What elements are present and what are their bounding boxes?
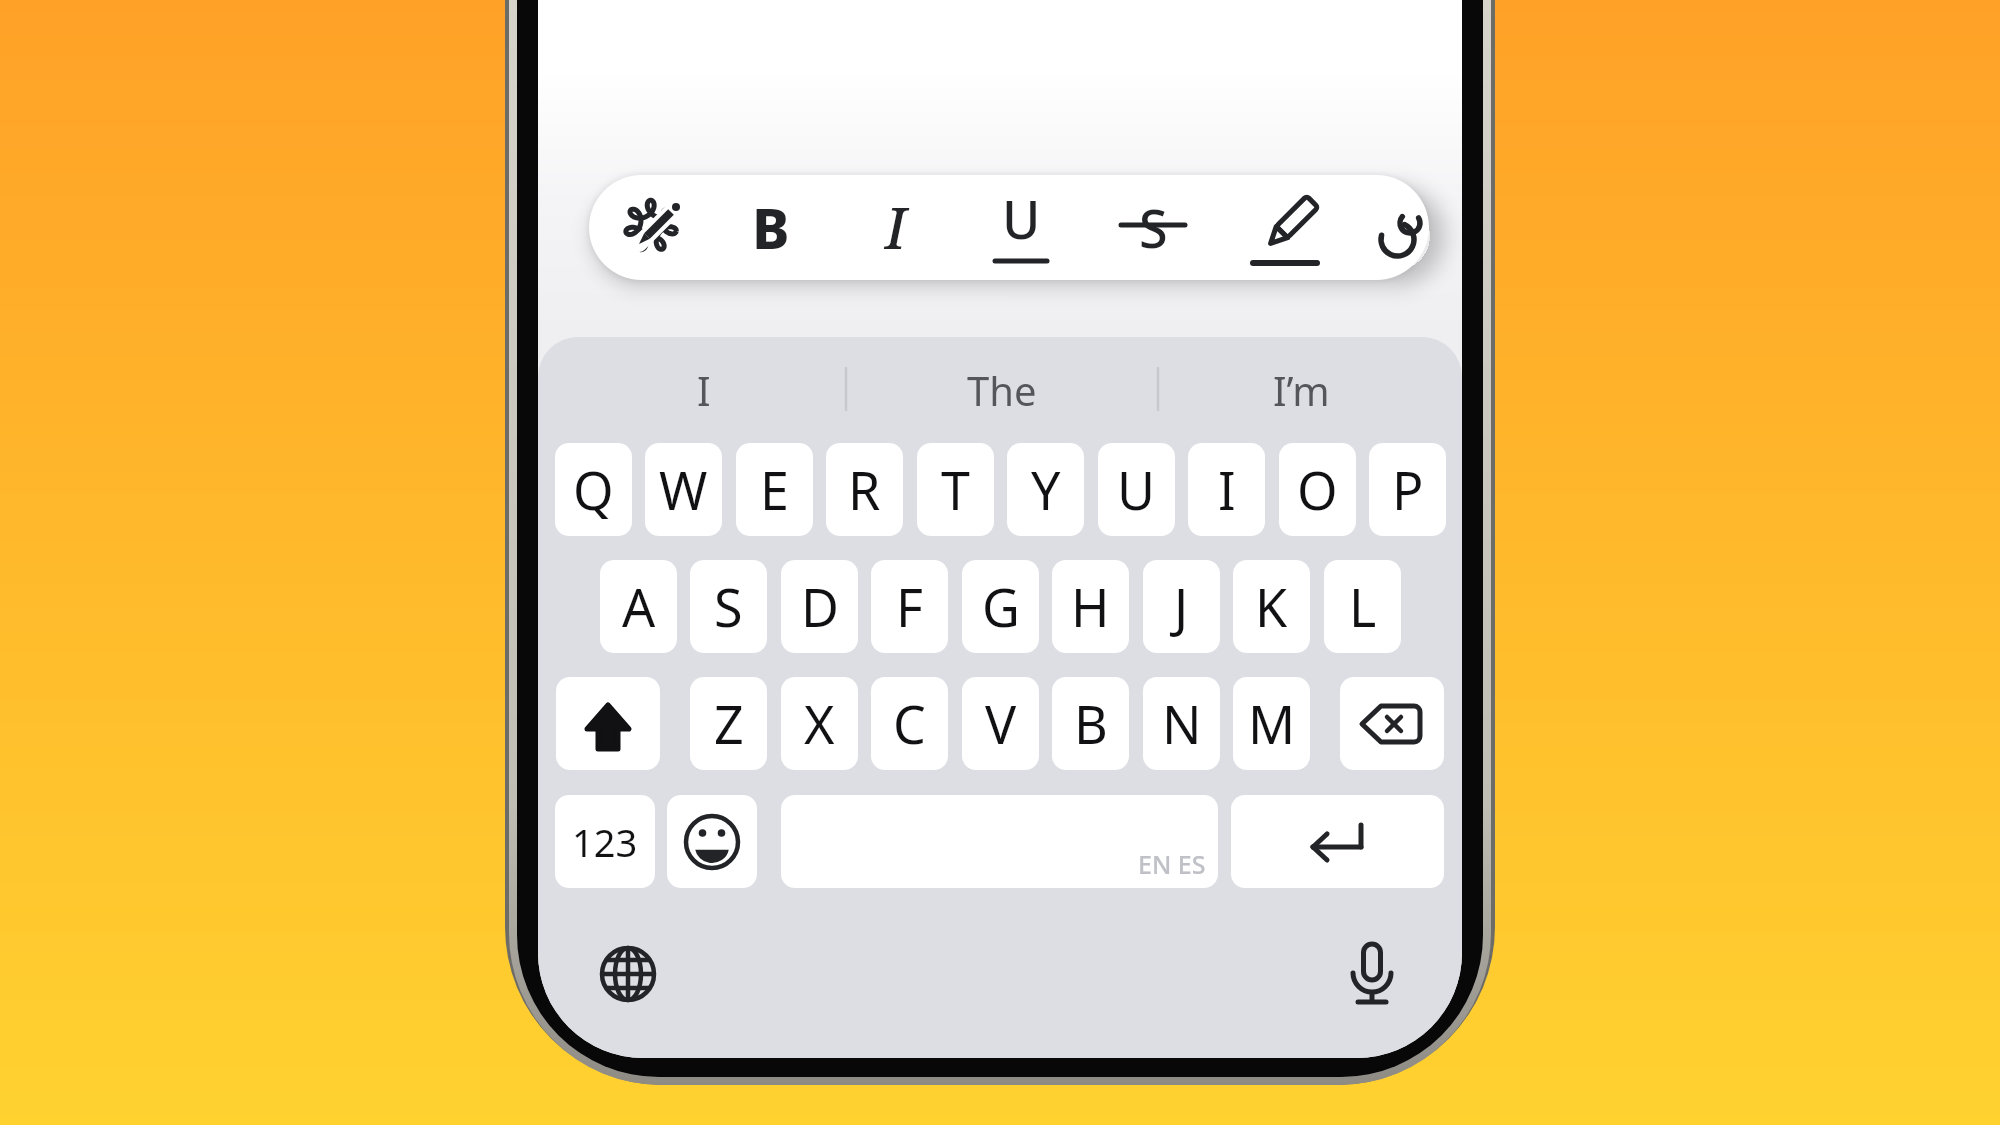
button[interactable]: K [1233, 560, 1310, 653]
button[interactable]: I’m [1158, 348, 1445, 432]
staticText: S [1139, 192, 1168, 263]
staticText: I [697, 363, 711, 417]
staticText: T [941, 454, 970, 525]
staticText: Z [714, 688, 744, 759]
button[interactable]: H [1052, 560, 1129, 653]
button[interactable]: U [1098, 443, 1175, 536]
staticText: W [659, 454, 708, 525]
button[interactable]: I [1188, 443, 1265, 536]
staticText: E [760, 454, 789, 525]
button[interactable]: J [1143, 560, 1220, 653]
staticText: D [801, 571, 839, 642]
staticText: C [893, 688, 926, 759]
staticText: G [982, 571, 1020, 642]
staticText: R [848, 454, 881, 525]
button[interactable]: V [962, 677, 1039, 770]
button[interactable]: The [848, 348, 1156, 432]
button[interactable]: O [1279, 443, 1356, 536]
staticText: B [1074, 688, 1108, 759]
button[interactable]: Z [690, 677, 767, 770]
staticText: I [885, 189, 907, 265]
button[interactable]: M [1233, 677, 1310, 770]
staticText: O [1297, 454, 1338, 525]
button[interactable]: Q [555, 443, 632, 536]
button[interactable]: N [1143, 677, 1220, 770]
button[interactable]: L [1324, 560, 1401, 653]
staticText: X [804, 688, 835, 759]
button[interactable]: D [781, 560, 858, 653]
staticText: Y [1031, 454, 1061, 525]
staticText: V [985, 688, 1017, 759]
button[interactable]: B [731, 187, 811, 267]
staticText: S [714, 571, 743, 642]
staticText: F [896, 571, 923, 642]
button[interactable] [1340, 677, 1444, 770]
button[interactable]: C [871, 677, 948, 770]
staticText: EN ES [1138, 847, 1206, 881]
staticText: A [622, 571, 656, 642]
staticText: U [1117, 454, 1156, 525]
staticText: M [1248, 688, 1296, 759]
button[interactable] [781, 795, 1218, 888]
button[interactable] [1332, 932, 1412, 1012]
button[interactable] [1249, 187, 1329, 267]
staticText: 123 [572, 816, 638, 868]
staticText: P [1392, 454, 1424, 525]
button[interactable]: R [826, 443, 903, 536]
button[interactable] [588, 934, 668, 1014]
staticText: K [1255, 571, 1288, 642]
button[interactable]: T [917, 443, 994, 536]
button[interactable]: P [1369, 443, 1446, 536]
button[interactable]: I [560, 348, 847, 432]
button[interactable]: S [1113, 187, 1193, 267]
staticText: H [1071, 571, 1110, 642]
staticText: B [752, 189, 790, 265]
button[interactable]: G [962, 560, 1039, 653]
button[interactable]: E [736, 443, 813, 536]
button[interactable] [1231, 795, 1444, 888]
button[interactable]: X [781, 677, 858, 770]
staticText: I [1218, 454, 1236, 525]
staticText: I’m [1273, 363, 1330, 417]
button[interactable] [555, 795, 655, 888]
button[interactable] [667, 795, 757, 888]
button[interactable]: A [600, 560, 677, 653]
staticText: N [1162, 688, 1202, 759]
button[interactable]: F [871, 560, 948, 653]
button[interactable]: W [645, 443, 722, 536]
staticText: The [967, 363, 1037, 417]
staticText: L [1349, 571, 1377, 642]
button[interactable]: U [981, 179, 1061, 257]
button[interactable]: B [1052, 677, 1129, 770]
button[interactable]: I [856, 187, 936, 267]
button[interactable]: Y [1007, 443, 1084, 536]
button[interactable] [612, 187, 692, 267]
staticText: J [1174, 571, 1189, 642]
button[interactable]: S [690, 560, 767, 653]
button[interactable] [556, 677, 660, 770]
staticText: U [1002, 183, 1041, 254]
staticText: Q [573, 454, 614, 525]
